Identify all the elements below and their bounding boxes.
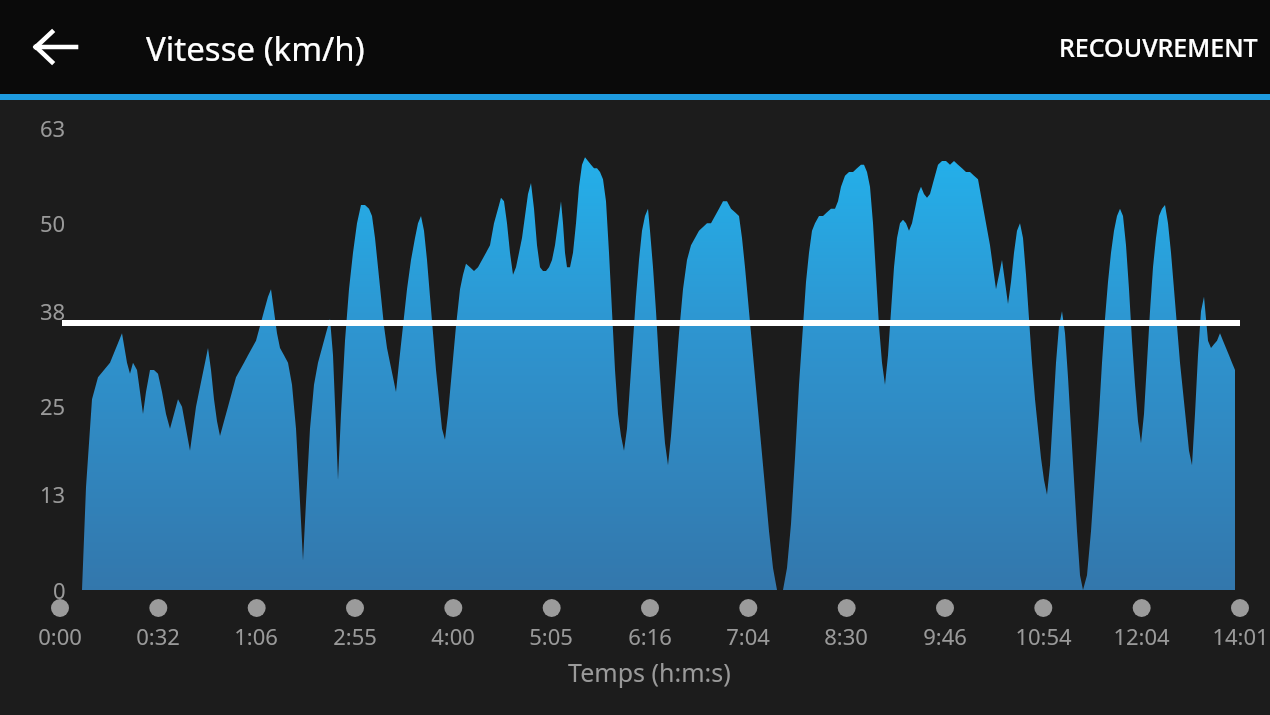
- staticText: 7:04: [726, 621, 770, 651]
- staticText: 9:46: [923, 621, 967, 651]
- staticText: 6:16: [628, 621, 672, 651]
- staticText: 0:32: [136, 621, 180, 651]
- staticText: 25: [40, 391, 66, 421]
- staticText: 14:01: [1212, 621, 1269, 651]
- staticText: 13: [40, 479, 66, 509]
- button[interactable]: Back: [20, 14, 92, 80]
- staticText: 10:54: [1015, 621, 1072, 651]
- staticText: 38: [40, 296, 66, 326]
- staticText: Temps (h:m:s): [568, 655, 731, 689]
- button[interactable]: RECOUVREMENT: [1010, 16, 1258, 78]
- staticText: 4:00: [431, 621, 475, 651]
- staticText: 12:04: [1113, 621, 1170, 651]
- staticText: 0: [53, 575, 66, 605]
- staticText: 2:55: [333, 621, 377, 651]
- staticText: 8:30: [824, 621, 868, 651]
- staticText: 50: [40, 208, 66, 238]
- staticText: RECOUVREMENT: [1059, 30, 1258, 64]
- staticText: 1:06: [234, 621, 278, 651]
- staticText: 5:05: [529, 621, 573, 651]
- staticText: Vitesse (km/h): [146, 26, 365, 71]
- staticText: 0:00: [38, 621, 82, 651]
- staticText: 63: [40, 113, 66, 143]
